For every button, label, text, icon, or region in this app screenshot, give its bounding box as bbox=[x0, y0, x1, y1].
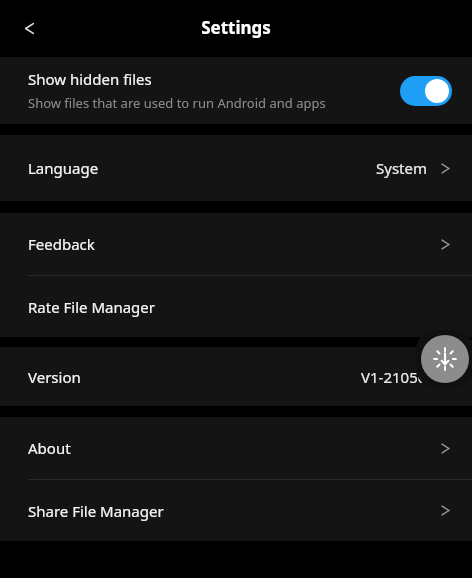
staticText: About bbox=[28, 438, 71, 458]
staticText: Show hidden files bbox=[28, 69, 152, 89]
button[interactable]: Feedback bbox=[0, 213, 472, 275]
button[interactable]: Show hidden files toggle bbox=[400, 76, 452, 106]
staticText: Feedback bbox=[28, 234, 95, 254]
staticText: Settings bbox=[201, 16, 271, 39]
staticText: V1-21056 bbox=[361, 367, 427, 387]
button[interactable]: Rate File Manager bbox=[0, 276, 472, 337]
button[interactable]: Back bbox=[10, 9, 48, 47]
button[interactable]: Show hidden files bbox=[0, 57, 472, 124]
button[interactable]: Assistive menu bbox=[416, 330, 472, 388]
button[interactable]: Language bbox=[0, 135, 472, 201]
staticText: Language bbox=[28, 158, 99, 178]
staticText: System bbox=[376, 158, 427, 178]
staticText: Share File Manager bbox=[28, 501, 164, 521]
staticText: Version bbox=[28, 367, 81, 387]
button[interactable]: Share File Manager bbox=[0, 480, 472, 541]
button[interactable]: Version bbox=[0, 347, 472, 406]
staticText: Rate File Manager bbox=[28, 297, 155, 317]
staticText: Show files that are used to run Android … bbox=[28, 94, 326, 112]
button[interactable]: About bbox=[0, 417, 472, 479]
